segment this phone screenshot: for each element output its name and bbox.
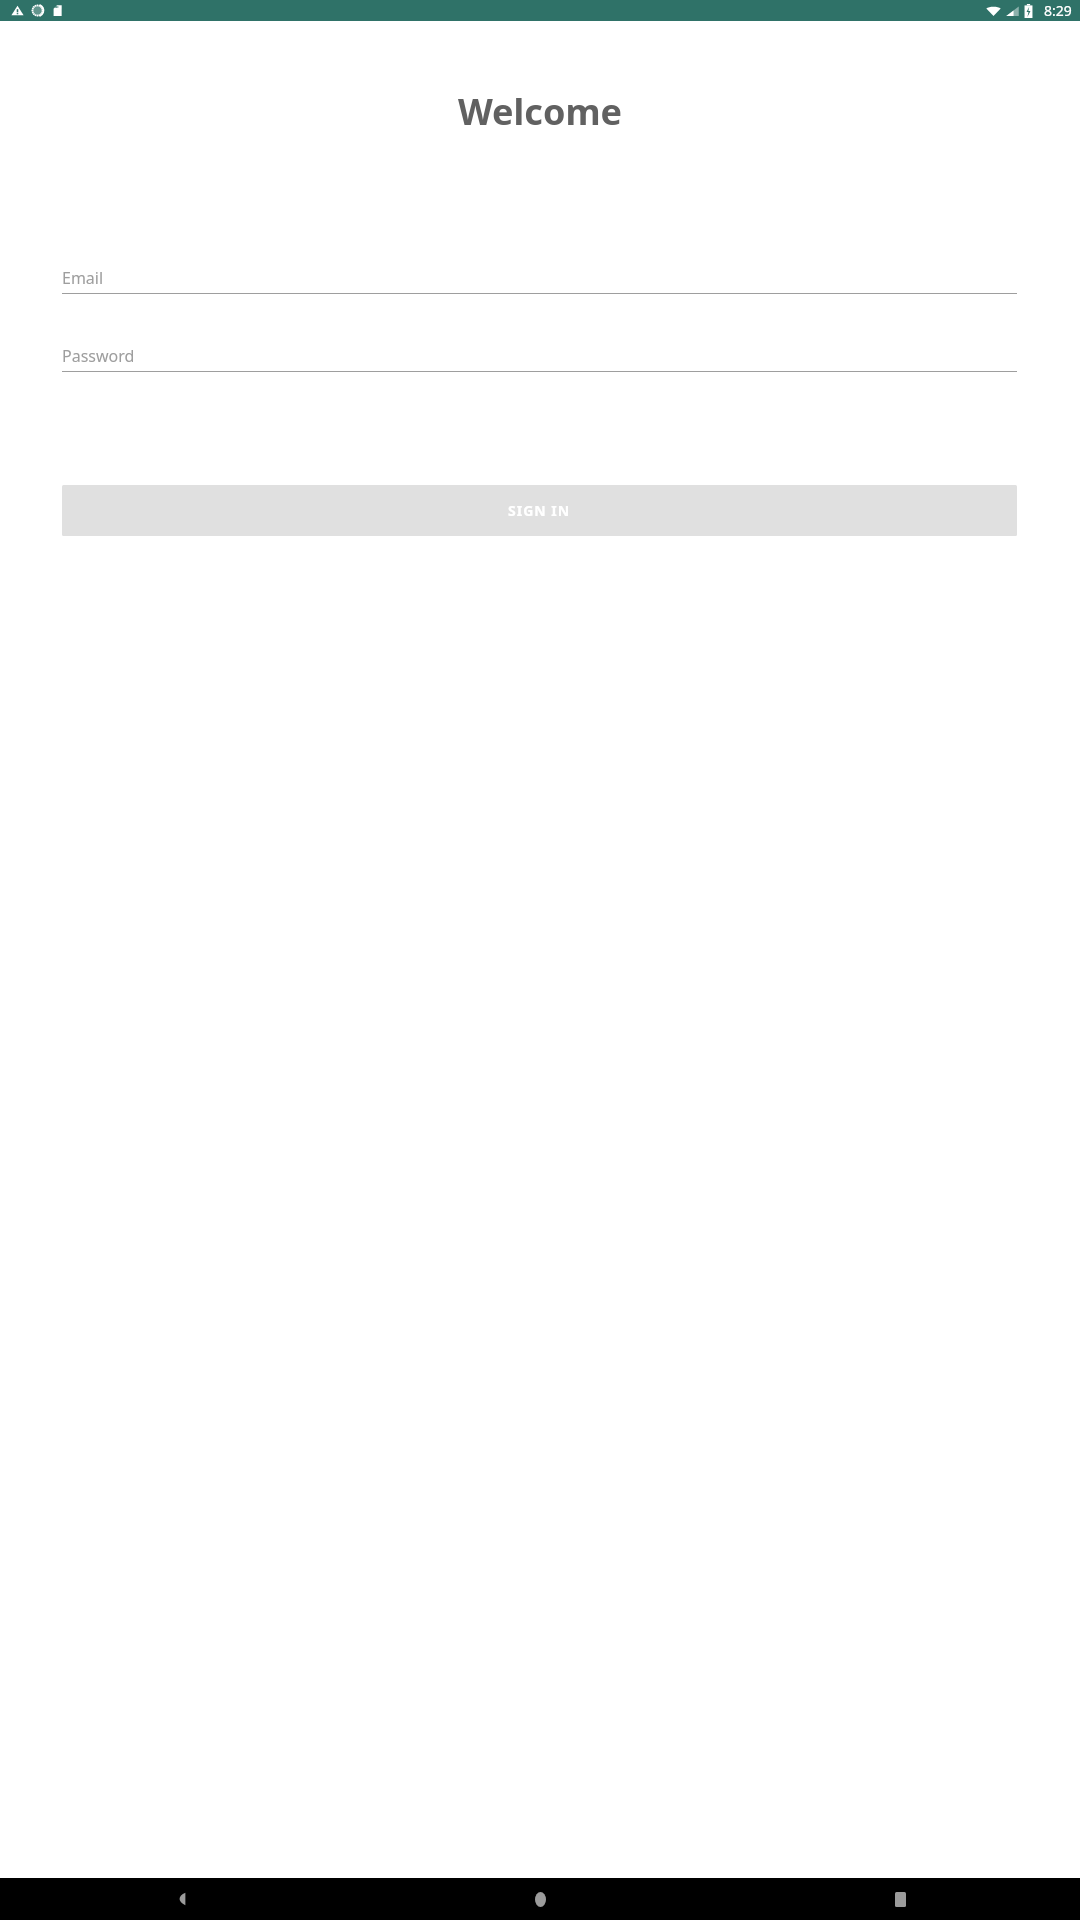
staticText: Password (62, 345, 135, 364)
staticText: 8:29 (1044, 1, 1072, 20)
staticText: Email (62, 267, 104, 286)
button[interactable]: Email (62, 267, 1017, 294)
button[interactable]: Password (62, 345, 1017, 372)
staticText: SIGN IN (508, 501, 571, 520)
staticText: Welcome (0, 87, 1080, 136)
button[interactable]: Recent apps (720, 1878, 1080, 1920)
button[interactable]: Home (360, 1878, 720, 1920)
button[interactable]: Back (0, 1878, 360, 1920)
